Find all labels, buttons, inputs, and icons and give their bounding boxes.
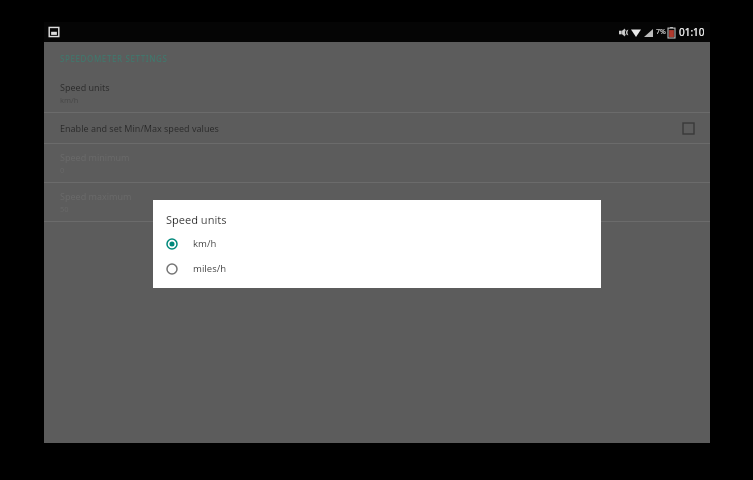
other: miles/h radio button bbox=[166, 263, 178, 275]
staticText: Speed units bbox=[166, 212, 227, 227]
other: Screenshot notification bbox=[48, 26, 60, 38]
staticText: 7% bbox=[656, 27, 666, 37]
button[interactable]: km/h radio button bbox=[153, 236, 601, 251]
staticText: 01:10 bbox=[679, 25, 705, 39]
staticText: km/h bbox=[193, 237, 217, 250]
other: Enable Min Max checkbox bbox=[683, 123, 694, 134]
staticText: Speed maximum bbox=[60, 190, 132, 202]
staticText: miles/h bbox=[193, 262, 227, 275]
button[interactable]: miles/h radio button bbox=[153, 261, 601, 276]
staticText: Enable and set Min/Max speed values bbox=[60, 122, 683, 134]
button[interactable]: Enable and set Min/Max speed values bbox=[44, 113, 710, 143]
staticText: Speed minimum bbox=[60, 151, 130, 163]
other: km/h radio button bbox=[166, 238, 178, 250]
staticText: Speed units bbox=[60, 81, 110, 93]
button[interactable]: Speed maximum bbox=[44, 183, 710, 221]
staticText: SPEEDOMETER SETTINGS bbox=[60, 53, 168, 64]
staticText: km/h bbox=[60, 95, 79, 105]
